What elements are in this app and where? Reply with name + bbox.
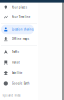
button[interactable]: Your places <box>0 3 38 12</box>
staticText: Google Earth <box>12 82 30 85</box>
button[interactable]: Satellite <box>0 68 38 78</box>
button[interactable]: Location sharing <box>0 25 38 34</box>
staticText: Traffic <box>12 50 19 54</box>
button[interactable]: Google Earth <box>0 78 38 89</box>
button[interactable]: Tips and Tricks <box>0 91 38 100</box>
staticText: Your places <box>12 6 27 9</box>
staticText: Satellite <box>12 71 23 75</box>
staticText: Your Timeline <box>12 15 31 19</box>
staticText: Tips and Tricks <box>2 94 20 97</box>
staticText: Offline maps <box>12 37 29 41</box>
button[interactable]: Offline maps <box>0 34 38 44</box>
staticText: Location sharing <box>12 28 34 31</box>
button[interactable]: Transit <box>0 57 38 68</box>
button[interactable]: Your Timeline <box>0 12 38 22</box>
staticText: Transit <box>12 61 20 64</box>
button[interactable]: Traffic <box>0 47 38 57</box>
